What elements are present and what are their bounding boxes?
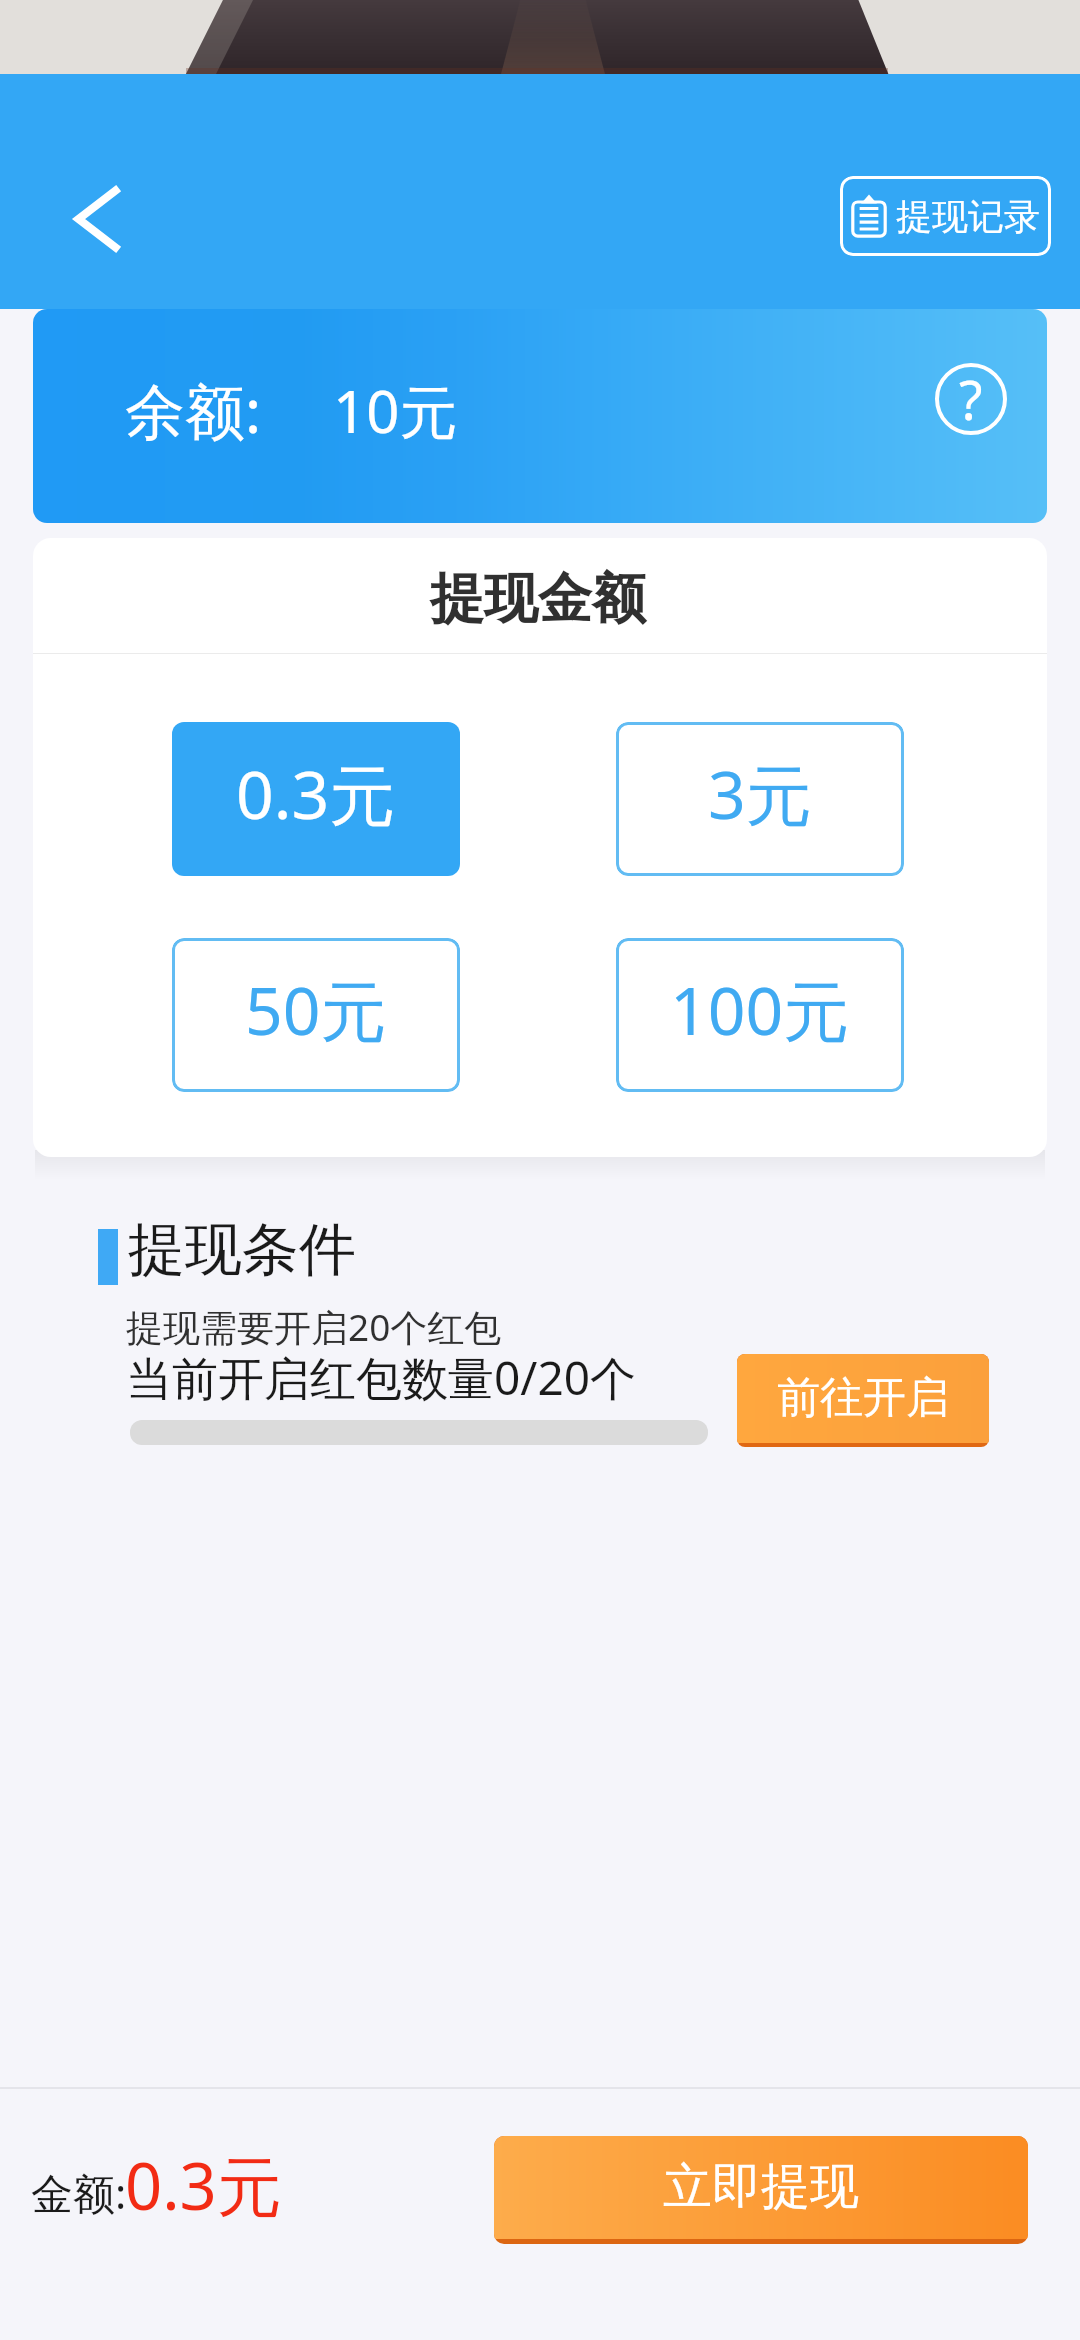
staticText: 100元: [670, 964, 850, 1054]
staticText: 提现需要开启20个红包: [126, 1301, 502, 1352]
staticText: 金额:: [31, 2164, 127, 2221]
button[interactable]: 3元: [616, 722, 904, 876]
staticText: 立即提现: [663, 2156, 859, 2218]
staticText: 提现金额: [430, 565, 646, 633]
staticText: 提现条件: [128, 1214, 356, 1286]
staticText: 余额:: [125, 369, 262, 451]
button[interactable]: 0.3元: [172, 722, 460, 876]
button[interactable]: Help: [935, 363, 1007, 435]
staticText: 0.3元: [236, 748, 396, 838]
staticText: 3元: [708, 748, 812, 838]
staticText: 前往开启: [777, 1371, 949, 1425]
button[interactable]: 余额:: [33, 309, 1047, 523]
button[interactable]: 50元: [172, 938, 460, 1092]
staticText: 10元: [333, 371, 458, 450]
button[interactable]: 立即提现: [494, 2136, 1028, 2244]
staticText: 50元: [245, 964, 387, 1054]
staticText: 提现记录: [896, 194, 1040, 239]
button[interactable]: 提现记录: [840, 176, 1051, 256]
button[interactable]: 前往开启: [737, 1354, 989, 1447]
staticText: ?: [959, 362, 983, 434]
staticText: 当前开启红包数量0/20个: [126, 1346, 637, 1409]
staticText: 0.3元: [125, 2141, 282, 2230]
button[interactable]: Back: [47, 167, 147, 271]
button[interactable]: 100元: [616, 938, 904, 1092]
